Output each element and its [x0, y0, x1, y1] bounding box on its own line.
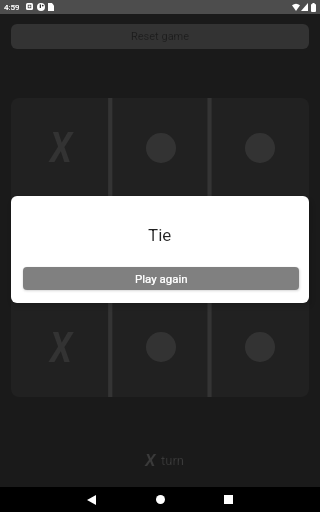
staticText: Tie: [148, 225, 172, 245]
button[interactable]: [210, 297, 309, 397]
staticText: X: [50, 123, 72, 172]
button[interactable]: [210, 197, 309, 297]
button[interactable]: Play again: [23, 267, 299, 290]
button[interactable]: X: [11, 297, 111, 397]
button[interactable]: X: [11, 98, 111, 197]
button[interactable]: Back: [76, 487, 106, 512]
staticText: 4:59: [4, 3, 20, 12]
button[interactable]: Recent apps: [213, 487, 243, 512]
staticText: X: [50, 323, 72, 372]
staticText: Play again: [135, 272, 188, 285]
staticText: Reset game: [131, 30, 190, 43]
button[interactable]: [111, 197, 210, 297]
staticText: X: [50, 223, 72, 272]
button[interactable]: [111, 297, 210, 397]
staticText: turn: [161, 453, 185, 468]
button[interactable]: [111, 98, 210, 197]
staticText: X: [145, 450, 156, 470]
button[interactable]: [210, 98, 309, 197]
button[interactable]: X: [11, 197, 111, 297]
button[interactable]: Home: [145, 487, 175, 512]
